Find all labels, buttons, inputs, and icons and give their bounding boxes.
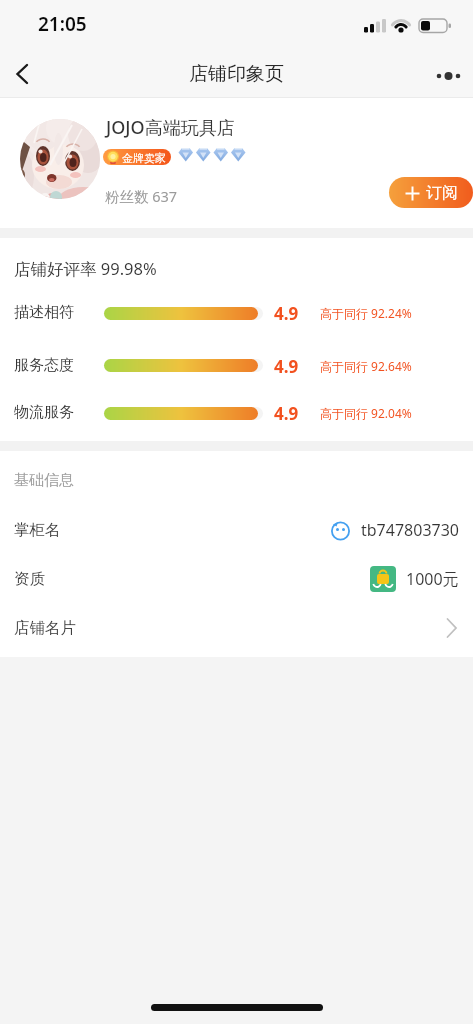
staticText: 高于同行 92.04% bbox=[320, 405, 412, 421]
staticText: 金牌卖家 bbox=[122, 151, 166, 165]
staticText: 掌柜名 bbox=[14, 520, 61, 540]
staticText: 粉丝数 637 bbox=[105, 186, 178, 206]
staticText: 21:05 bbox=[38, 11, 87, 37]
button[interactable]: 掌柜名 bbox=[0, 504, 473, 555]
staticText: 4.9 bbox=[274, 402, 299, 425]
staticText: 店铺好评率 99.98% bbox=[14, 257, 157, 280]
staticText: 4.9 bbox=[274, 302, 299, 325]
staticText: 店铺名片 bbox=[14, 618, 76, 638]
button[interactable] bbox=[429, 55, 473, 97]
staticText: 描述相符 bbox=[14, 303, 74, 322]
staticText: 4.9 bbox=[274, 355, 299, 378]
button[interactable]: 店铺名片 bbox=[0, 602, 473, 653]
button[interactable]: 订阅 bbox=[389, 177, 473, 208]
staticText: 订阅 bbox=[426, 183, 458, 203]
staticText: 服务态度 bbox=[14, 356, 74, 375]
staticText: 资质 bbox=[14, 569, 45, 589]
staticText: 基础信息 bbox=[14, 471, 74, 490]
staticText: 高于同行 92.64% bbox=[320, 358, 412, 374]
staticText: 店铺印象页 bbox=[189, 62, 284, 86]
staticText: tb747803730 bbox=[361, 519, 459, 541]
staticText: 物流服务 bbox=[14, 403, 74, 422]
button[interactable] bbox=[0, 55, 44, 97]
button[interactable]: 资质 bbox=[0, 555, 473, 602]
staticText: JOJO高端玩具店 bbox=[106, 115, 235, 140]
staticText: 1000元 bbox=[406, 568, 459, 590]
staticText: 高于同行 92.24% bbox=[320, 305, 412, 321]
